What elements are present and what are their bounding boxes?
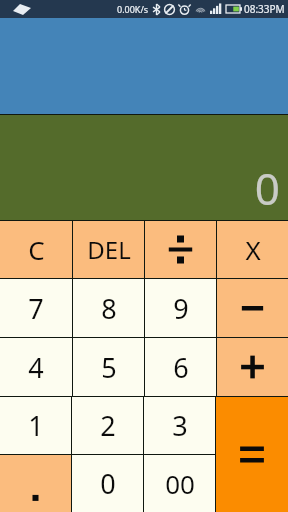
button[interactable]: 9: [145, 279, 216, 337]
button[interactable]: Divide: [145, 221, 216, 278]
button[interactable]: 7: [0, 279, 72, 337]
button[interactable]: 0: [0, 115, 288, 220]
button[interactable]: Decimal point: [0, 455, 71, 512]
staticText: 4: [28, 349, 44, 386]
button[interactable]: Equals: [216, 397, 288, 512]
button[interactable]: Plus: [217, 338, 288, 396]
staticText: 7: [28, 290, 44, 327]
staticText: 2: [100, 407, 116, 444]
staticText: 3: [172, 407, 188, 444]
button[interactable]: Minus: [217, 279, 288, 337]
staticText: 00: [165, 466, 195, 501]
button[interactable]: 2: [72, 397, 143, 454]
button[interactable]: 1: [0, 397, 71, 454]
staticText: 6: [173, 349, 189, 386]
button[interactable]: DEL: [73, 221, 144, 278]
staticText: C: [28, 232, 45, 267]
staticText: 0: [254, 158, 280, 218]
button[interactable]: 4: [0, 338, 72, 396]
button[interactable]: 6: [145, 338, 216, 396]
button[interactable]: 0: [72, 455, 143, 512]
staticText: 8: [101, 290, 117, 327]
staticText: 08:33PM: [244, 2, 285, 16]
staticText: 9: [173, 290, 189, 327]
button[interactable]: 00: [144, 455, 215, 512]
staticText: 0.00K/s: [117, 3, 149, 15]
staticText: 1: [28, 407, 44, 444]
button[interactable]: 5: [73, 338, 144, 396]
staticText: 5: [101, 349, 117, 386]
staticText: 0: [100, 465, 116, 502]
button[interactable]: 8: [73, 279, 144, 337]
staticText: DEL: [87, 233, 131, 266]
button[interactable]: 3: [144, 397, 215, 454]
button[interactable]: X: [217, 221, 288, 278]
button[interactable]: C: [0, 221, 72, 278]
staticText: X: [245, 232, 261, 267]
